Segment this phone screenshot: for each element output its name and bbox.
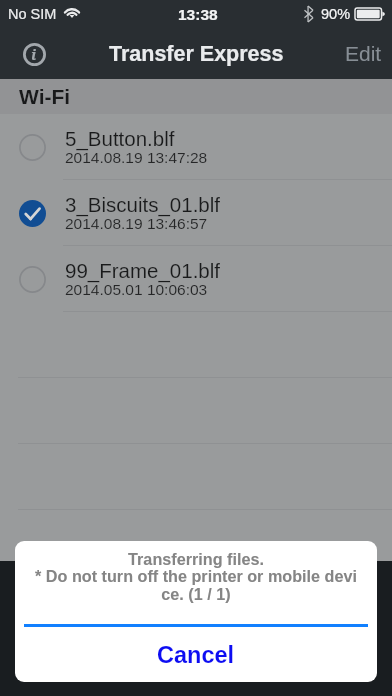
staticText: Edit [345,42,382,65]
staticText: 2014.08.19 13:46:57 [65,215,208,232]
staticText: 13:38 [178,6,218,23]
staticText: No SIM [8,6,57,22]
staticText: 2014.08.19 13:47:28 [65,149,208,166]
staticText: Wi-Fi [19,85,71,108]
button[interactable]: 5_Button.blf [0,114,392,180]
staticText: Transferring files. * Do not turn off th… [15,550,377,604]
staticText: Cancel [157,642,235,668]
staticText: 3_Biscuits_01.blf [65,193,220,216]
button[interactable]: 3_Biscuits_01.blf [0,180,392,246]
button[interactable]: Cancel [15,637,377,677]
staticText: 5_Button.blf [65,127,175,150]
button[interactable]: 99_Frame_01.blf [0,246,392,312]
staticText: 99_Frame_01.blf [65,259,220,282]
staticText: i [31,44,37,64]
staticText: Transfer Express [109,42,284,66]
button[interactable]: Edit [335,34,392,73]
staticText: 90% [321,6,351,22]
button[interactable]: Info [12,32,56,76]
staticText: 2014.05.01 10:06:03 [65,281,208,298]
